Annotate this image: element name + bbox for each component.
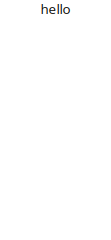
staticText: hello bbox=[40, 0, 70, 18]
